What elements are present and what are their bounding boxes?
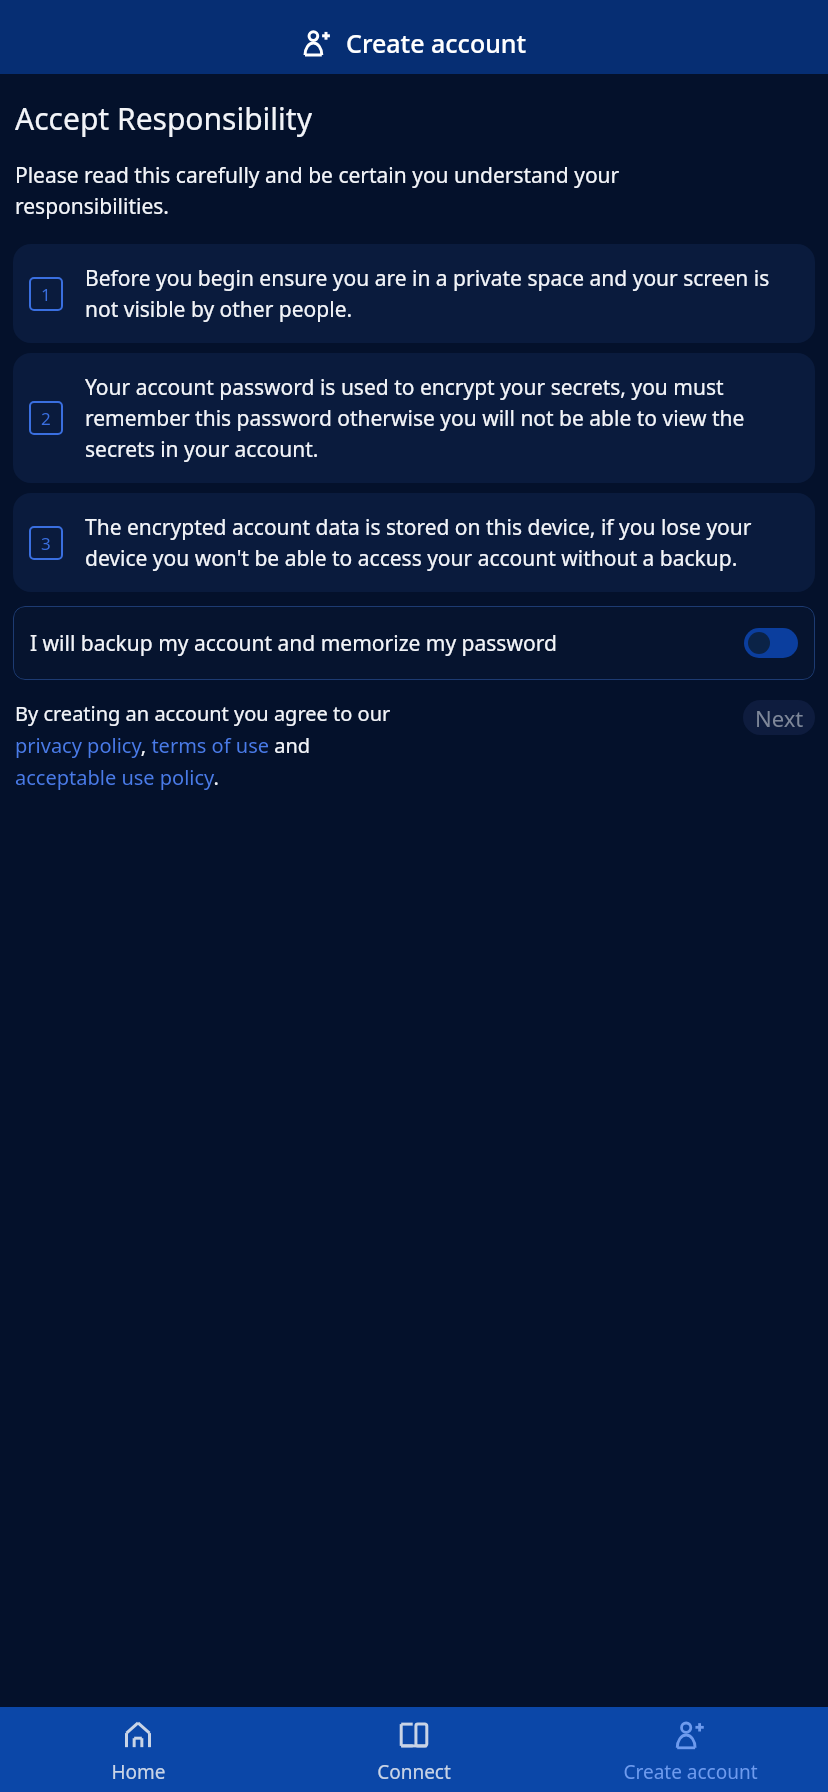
staticText: The encrypted account data is stored on … (85, 513, 799, 572)
button[interactable]: Create account (0, 0, 828, 74)
staticText: I will backup my account and memorize my… (30, 629, 728, 658)
button[interactable]: By creating an account you agree to our … (15, 700, 735, 791)
staticText: Next (755, 703, 804, 733)
other: Connect (398, 1719, 430, 1751)
staticText: Your account password is used to encrypt… (85, 373, 799, 463)
button[interactable]: Next (743, 700, 815, 735)
staticText: Before you begin ensure you are in a pri… (85, 264, 799, 323)
other: Home (122, 1719, 154, 1751)
button[interactable]: 3 (13, 493, 815, 592)
button[interactable]: Backup confirmation toggle (744, 628, 798, 658)
staticText: Accept Responsibility (15, 98, 312, 139)
button[interactable]: Create account (552, 1707, 828, 1792)
staticText: Please read this carefully and be certai… (15, 161, 775, 220)
button[interactable]: I will backup my account and memorize my… (13, 606, 815, 680)
button[interactable]: Home (0, 1707, 276, 1792)
staticText: Home (111, 1759, 166, 1785)
other: Create account (674, 1719, 706, 1751)
staticText: 3 (41, 532, 51, 555)
staticText: Create account (623, 1759, 758, 1785)
staticText: 1 (41, 283, 51, 306)
button[interactable]: 2 (13, 353, 815, 483)
staticText: Connect (377, 1759, 451, 1785)
staticText: Create account (346, 26, 527, 60)
staticText: 2 (41, 407, 51, 430)
button[interactable]: 1 (13, 244, 815, 343)
button[interactable]: Connect (276, 1707, 552, 1792)
other: Create account (302, 28, 332, 58)
